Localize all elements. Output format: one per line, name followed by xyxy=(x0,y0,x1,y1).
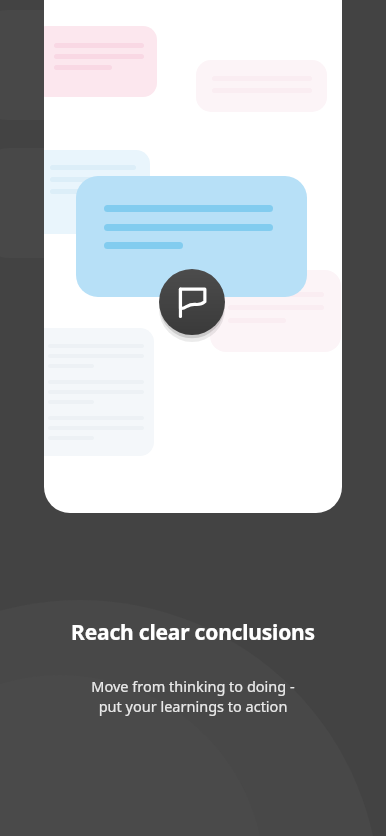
staticText: Reach clear conclusions xyxy=(71,618,315,647)
staticText: Move from thinking to doing - put your l… xyxy=(91,676,295,717)
button[interactable] xyxy=(76,176,307,297)
button[interactable]: Flag conclusion xyxy=(159,269,225,335)
